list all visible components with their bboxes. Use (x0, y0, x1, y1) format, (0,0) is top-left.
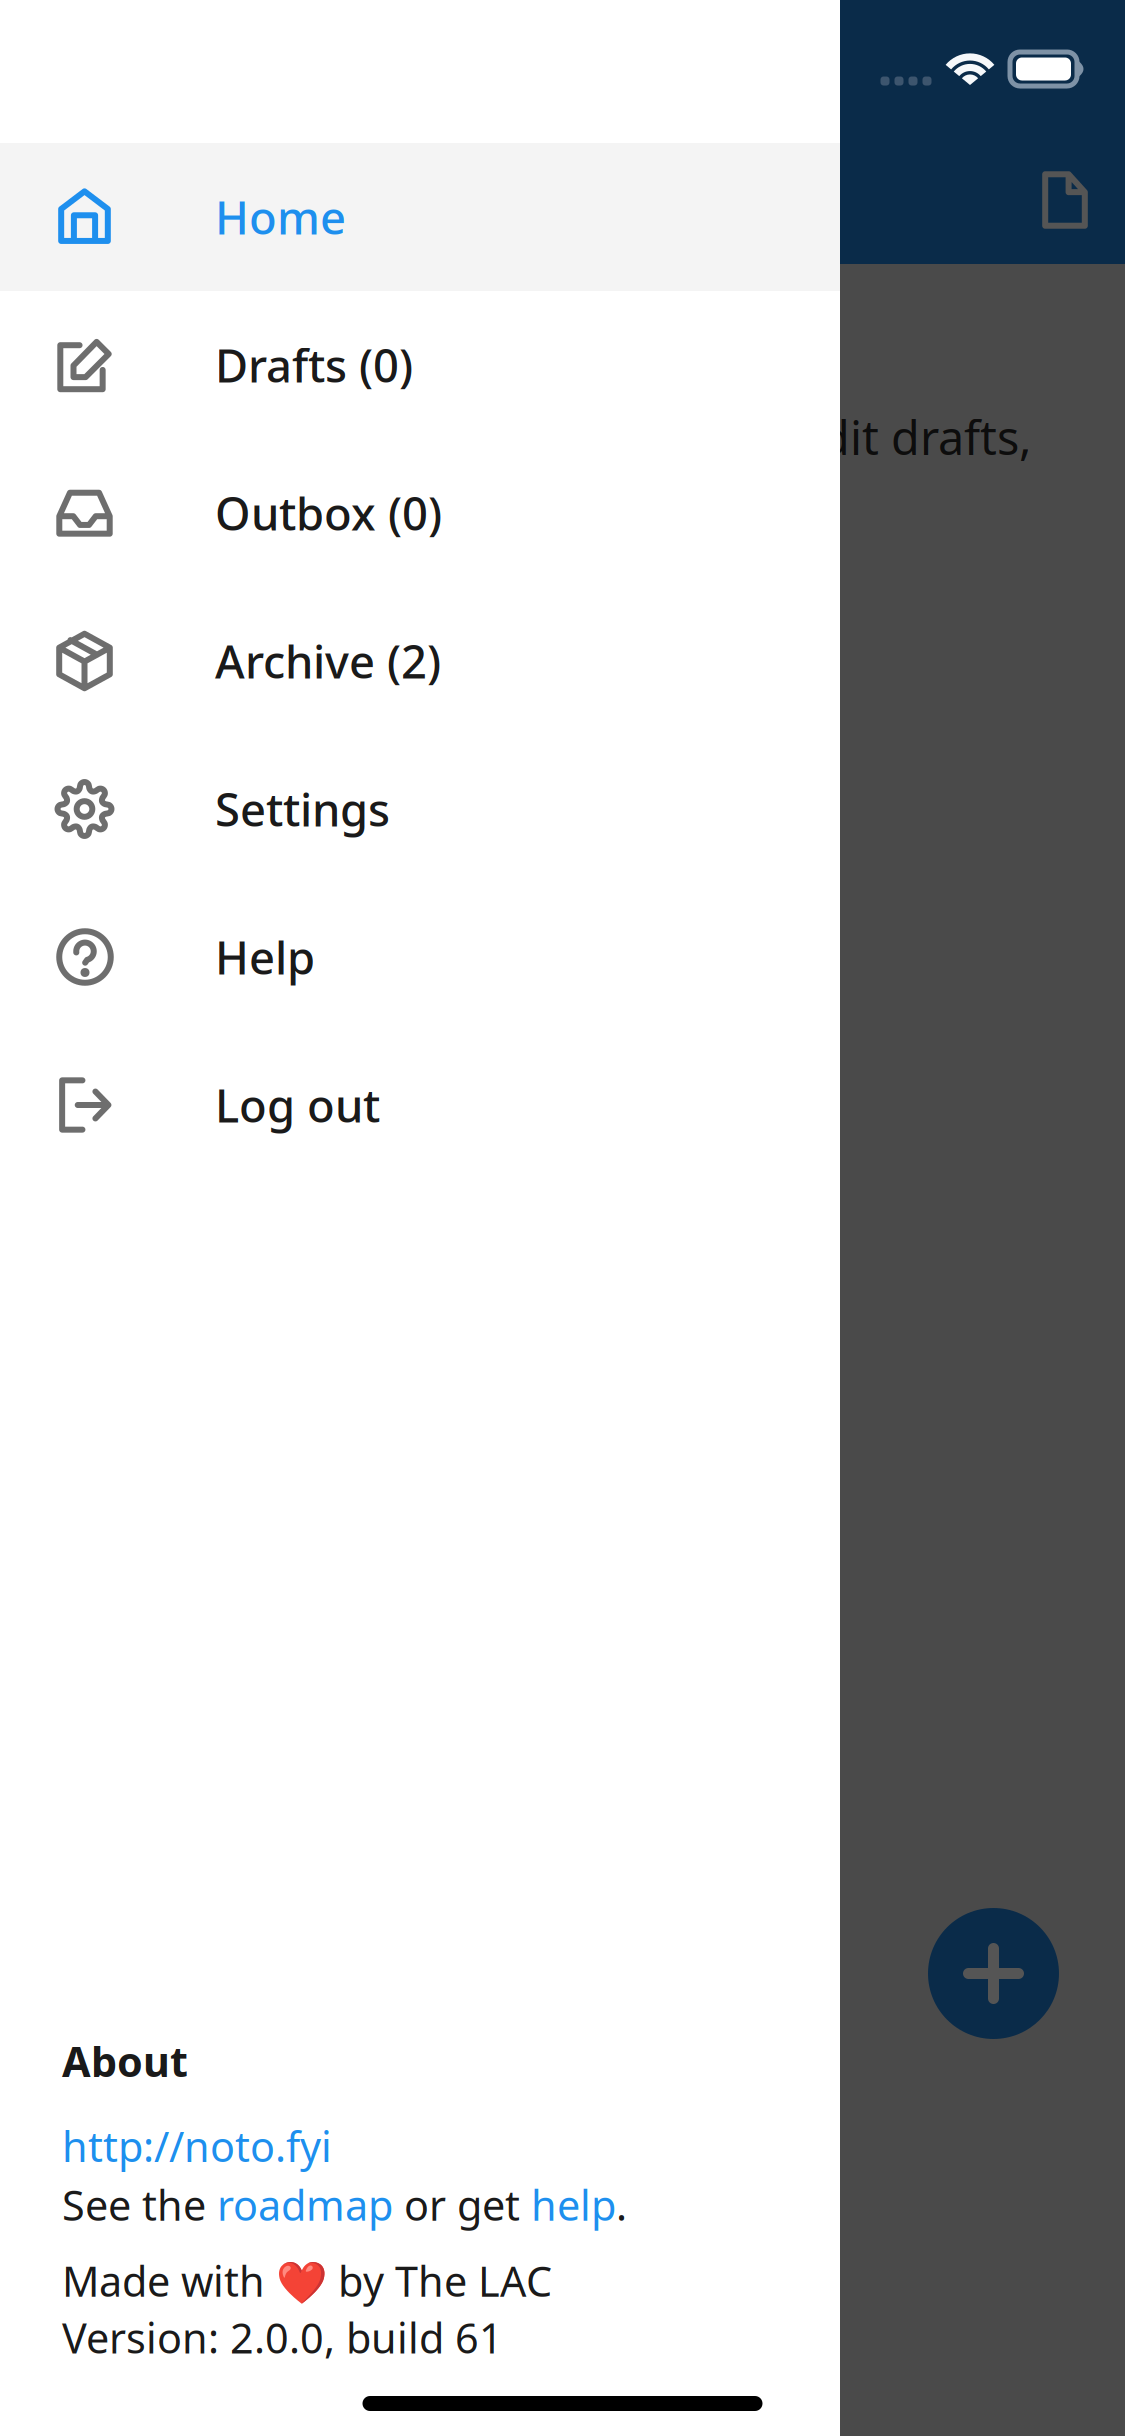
staticText: Outbox (0) (215, 483, 442, 543)
button[interactable]: Drafts (0) (0, 291, 840, 439)
staticText: Log out (215, 1075, 380, 1135)
staticText: About (62, 2034, 188, 2088)
staticText: http://noto.fyi (62, 2118, 332, 2173)
button[interactable]: New document (1012, 148, 1117, 252)
button[interactable]: Outbox (0) (0, 439, 840, 587)
staticText: See the roadmap or get help. (62, 2177, 627, 2232)
staticText: Settings (215, 779, 390, 839)
staticText: Tap + to create and edit drafts, (367, 406, 1032, 468)
staticText: Made with ❤️ by The LAC (62, 2253, 552, 2308)
button[interactable]: Archive (2) (0, 587, 840, 735)
button[interactable]: New draft (928, 1908, 1059, 2039)
staticText: Version: 2.0.0, build 61 (62, 2310, 503, 2365)
staticText: Drafts (0) (215, 335, 413, 395)
button[interactable]: Help (0, 883, 840, 1031)
button[interactable]: Settings (0, 735, 840, 883)
staticText: Archive (2) (215, 631, 441, 691)
button[interactable]: Home (0, 143, 840, 291)
staticText: Help (215, 927, 315, 987)
staticText: Home (215, 187, 346, 247)
button[interactable]: Log out (0, 1031, 840, 1179)
